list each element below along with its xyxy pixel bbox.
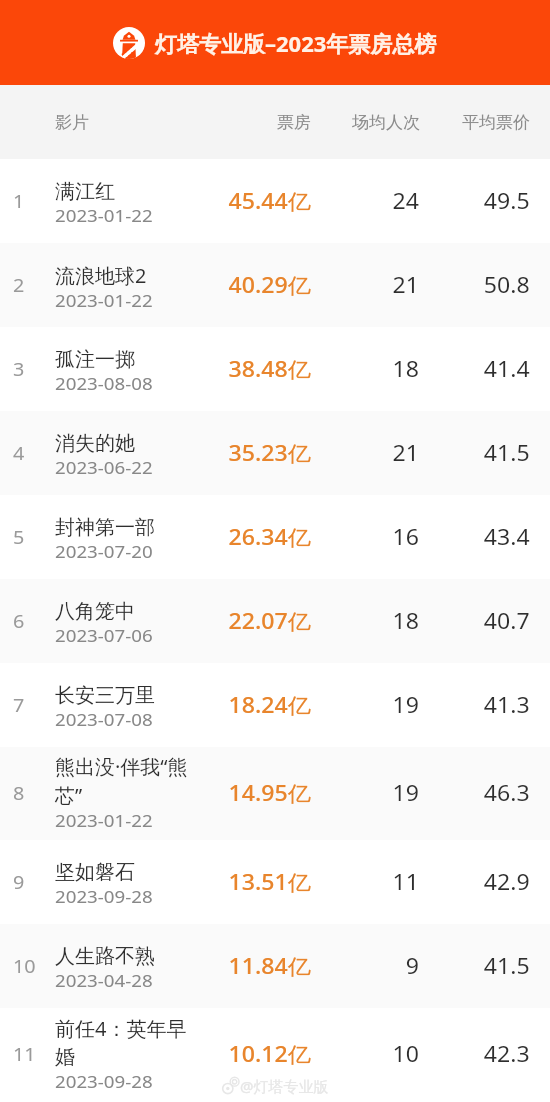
staticText: 熊出没·伴我“熊芯” bbox=[55, 753, 203, 809]
staticText: 孤注一掷 bbox=[55, 347, 135, 372]
staticText: 41.4 bbox=[484, 355, 530, 384]
staticText: 2023-09-28 bbox=[55, 1070, 153, 1093]
staticText: 38.48亿 bbox=[228, 355, 311, 384]
staticText: 坚如磐石 bbox=[55, 860, 135, 885]
staticText: 45.44亿 bbox=[228, 187, 311, 216]
staticText: 平均票价 bbox=[462, 112, 530, 133]
staticText: 18 bbox=[392, 355, 420, 384]
button[interactable]: 灯塔专业版–2023年票房总榜 bbox=[0, 0, 550, 85]
staticText: 11 bbox=[13, 1042, 36, 1067]
staticText: 14.95亿 bbox=[228, 779, 311, 808]
staticText: 16 bbox=[392, 523, 420, 552]
staticText: 2023-01-22 bbox=[55, 289, 153, 312]
button[interactable]: 11 bbox=[0, 1008, 550, 1101]
staticText: 2023-08-08 bbox=[55, 372, 153, 395]
staticText: 22.07亿 bbox=[228, 607, 311, 636]
staticText: 21 bbox=[392, 439, 420, 468]
button[interactable]: 7 bbox=[0, 663, 550, 747]
staticText: 18 bbox=[392, 607, 420, 636]
staticText: 消失的她 bbox=[55, 431, 135, 456]
staticText: 2 bbox=[13, 273, 25, 298]
staticText: 流浪地球2 bbox=[55, 262, 147, 289]
staticText: 35.23亿 bbox=[228, 439, 311, 468]
staticText: 4 bbox=[13, 441, 25, 466]
button[interactable]: 9 bbox=[0, 840, 550, 924]
staticText: 2023-07-20 bbox=[55, 540, 153, 563]
staticText: 10 bbox=[392, 1040, 420, 1069]
button[interactable]: 8 bbox=[0, 747, 550, 840]
staticText: 19 bbox=[392, 779, 420, 808]
staticText: 3 bbox=[13, 357, 25, 382]
staticText: 26.34亿 bbox=[228, 523, 311, 552]
staticText: 2023-01-22 bbox=[55, 809, 153, 832]
staticText: 41.5 bbox=[484, 952, 530, 981]
staticText: 前任4：英年早婚 bbox=[55, 1015, 203, 1070]
button[interactable]: 3 bbox=[0, 327, 550, 411]
staticText: 灯塔专业版–2023年票房总榜 bbox=[155, 28, 437, 58]
staticText: 24 bbox=[392, 187, 420, 216]
staticText: 49.5 bbox=[484, 187, 530, 216]
staticText: 影片 bbox=[55, 112, 89, 133]
staticText: 50.8 bbox=[484, 271, 530, 300]
staticText: 2023-07-08 bbox=[55, 708, 153, 731]
staticText: 18.24亿 bbox=[228, 691, 311, 720]
staticText: 40.7 bbox=[484, 607, 530, 636]
staticText: 42.3 bbox=[484, 1040, 530, 1069]
staticText: 19 bbox=[392, 691, 420, 720]
staticText: 43.4 bbox=[484, 523, 530, 552]
staticText: 场均人次 bbox=[352, 112, 420, 133]
button[interactable]: 6 bbox=[0, 579, 550, 663]
staticText: 9 bbox=[406, 952, 420, 981]
staticText: 1 bbox=[13, 189, 25, 214]
staticText: 41.3 bbox=[484, 691, 530, 720]
staticText: 8 bbox=[13, 781, 25, 806]
staticText: 21 bbox=[392, 271, 420, 300]
staticText: 13.51亿 bbox=[228, 868, 311, 897]
staticText: 人生路不熟 bbox=[55, 944, 155, 969]
staticText: 41.5 bbox=[484, 439, 530, 468]
button[interactable]: 5 bbox=[0, 495, 550, 579]
staticText: 满江红 bbox=[55, 179, 115, 204]
staticText: 2023-06-22 bbox=[55, 456, 153, 479]
staticText: 10 bbox=[13, 954, 36, 979]
staticText: 42.9 bbox=[484, 868, 530, 897]
staticText: 封神第一部 bbox=[55, 515, 155, 540]
staticText: 11 bbox=[392, 868, 420, 897]
button[interactable]: 4 bbox=[0, 411, 550, 495]
button[interactable]: 2 bbox=[0, 243, 550, 327]
staticText: 40.29亿 bbox=[228, 271, 311, 300]
staticText: 票房 bbox=[277, 112, 311, 133]
button[interactable]: 10 bbox=[0, 924, 550, 1008]
staticText: 11.84亿 bbox=[228, 952, 311, 981]
staticText: 2023-04-28 bbox=[55, 969, 153, 992]
staticText: 5 bbox=[13, 525, 25, 550]
button[interactable]: 1 bbox=[0, 159, 550, 243]
staticText: 2023-07-06 bbox=[55, 624, 153, 647]
staticText: 2023-01-22 bbox=[55, 204, 153, 227]
staticText: 2023-09-28 bbox=[55, 885, 153, 908]
staticText: @灯塔专业版 bbox=[240, 1076, 329, 1096]
staticText: 八角笼中 bbox=[55, 599, 135, 624]
staticText: 7 bbox=[13, 693, 25, 718]
staticText: 6 bbox=[13, 609, 25, 634]
staticText: 9 bbox=[13, 870, 25, 895]
staticText: 46.3 bbox=[484, 779, 530, 808]
staticText: 长安三万里 bbox=[55, 683, 155, 708]
staticText: 10.12亿 bbox=[228, 1040, 311, 1069]
